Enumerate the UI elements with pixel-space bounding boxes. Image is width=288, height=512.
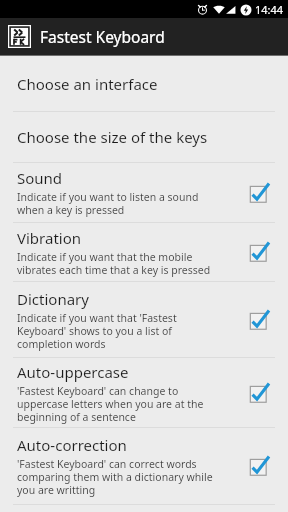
button[interactable]: Sound [0,163,288,222]
button[interactable]: Toggle setting [249,382,271,404]
staticText: Auto-correction [17,435,127,455]
button[interactable]: Toggle setting [249,455,271,477]
button[interactable]: Auto-uppercase [0,358,288,427]
staticText: 'Fastest Keyboard' can change to upperca… [17,384,204,424]
button[interactable]: Toggle setting [249,309,271,331]
staticText: 'Fastest Keyboard' can correct words com… [17,457,213,497]
button[interactable]: Toggle setting [249,182,271,204]
button[interactable]: Dictionary [0,282,288,357]
staticText: Sound [17,168,63,188]
staticText: Dictionary [17,289,89,309]
button[interactable]: Choose the size of the keys [0,112,288,162]
staticText: 14:44 [255,2,284,17]
staticText: Indicate if you want to listen a sound w… [17,190,199,217]
button[interactable]: Vibration [0,223,288,281]
button[interactable]: Toggle setting [249,241,271,263]
staticText: Fastest Keyboard [40,26,165,47]
staticText: Auto-uppercase [17,362,129,382]
staticText: Vibration [17,228,82,248]
button[interactable]: Auto-correction [0,428,288,504]
staticText: Choose the size of the keys [17,127,208,147]
staticText: Indicate if you want that 'Fastest Keybo… [17,311,177,351]
button[interactable]: Choose an interface [0,56,288,111]
staticText: Choose an interface [17,74,158,94]
staticText: Indicate if you want that the mobile vib… [17,250,211,277]
